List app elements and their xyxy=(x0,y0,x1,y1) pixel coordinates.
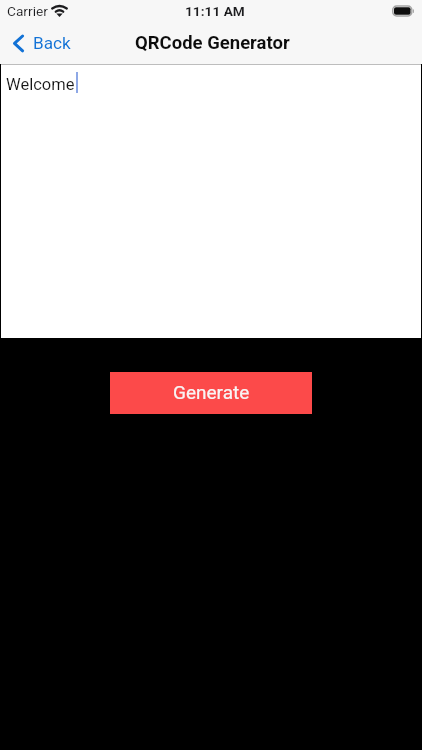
staticText: Back xyxy=(33,33,71,53)
staticText: 11:11 AM xyxy=(185,3,245,19)
button[interactable]: Back xyxy=(6,24,78,62)
button[interactable]: Generate xyxy=(110,372,312,414)
staticText: Generate xyxy=(173,381,250,403)
other: Wi-Fi xyxy=(52,4,68,18)
staticText: Welcome xyxy=(6,75,75,94)
other: Battery full xyxy=(392,5,414,17)
button[interactable]: Welcome xyxy=(0,65,422,338)
staticText: QRCode Generator xyxy=(135,32,290,54)
other: Back xyxy=(13,33,25,53)
staticText: Carrier xyxy=(7,3,48,19)
